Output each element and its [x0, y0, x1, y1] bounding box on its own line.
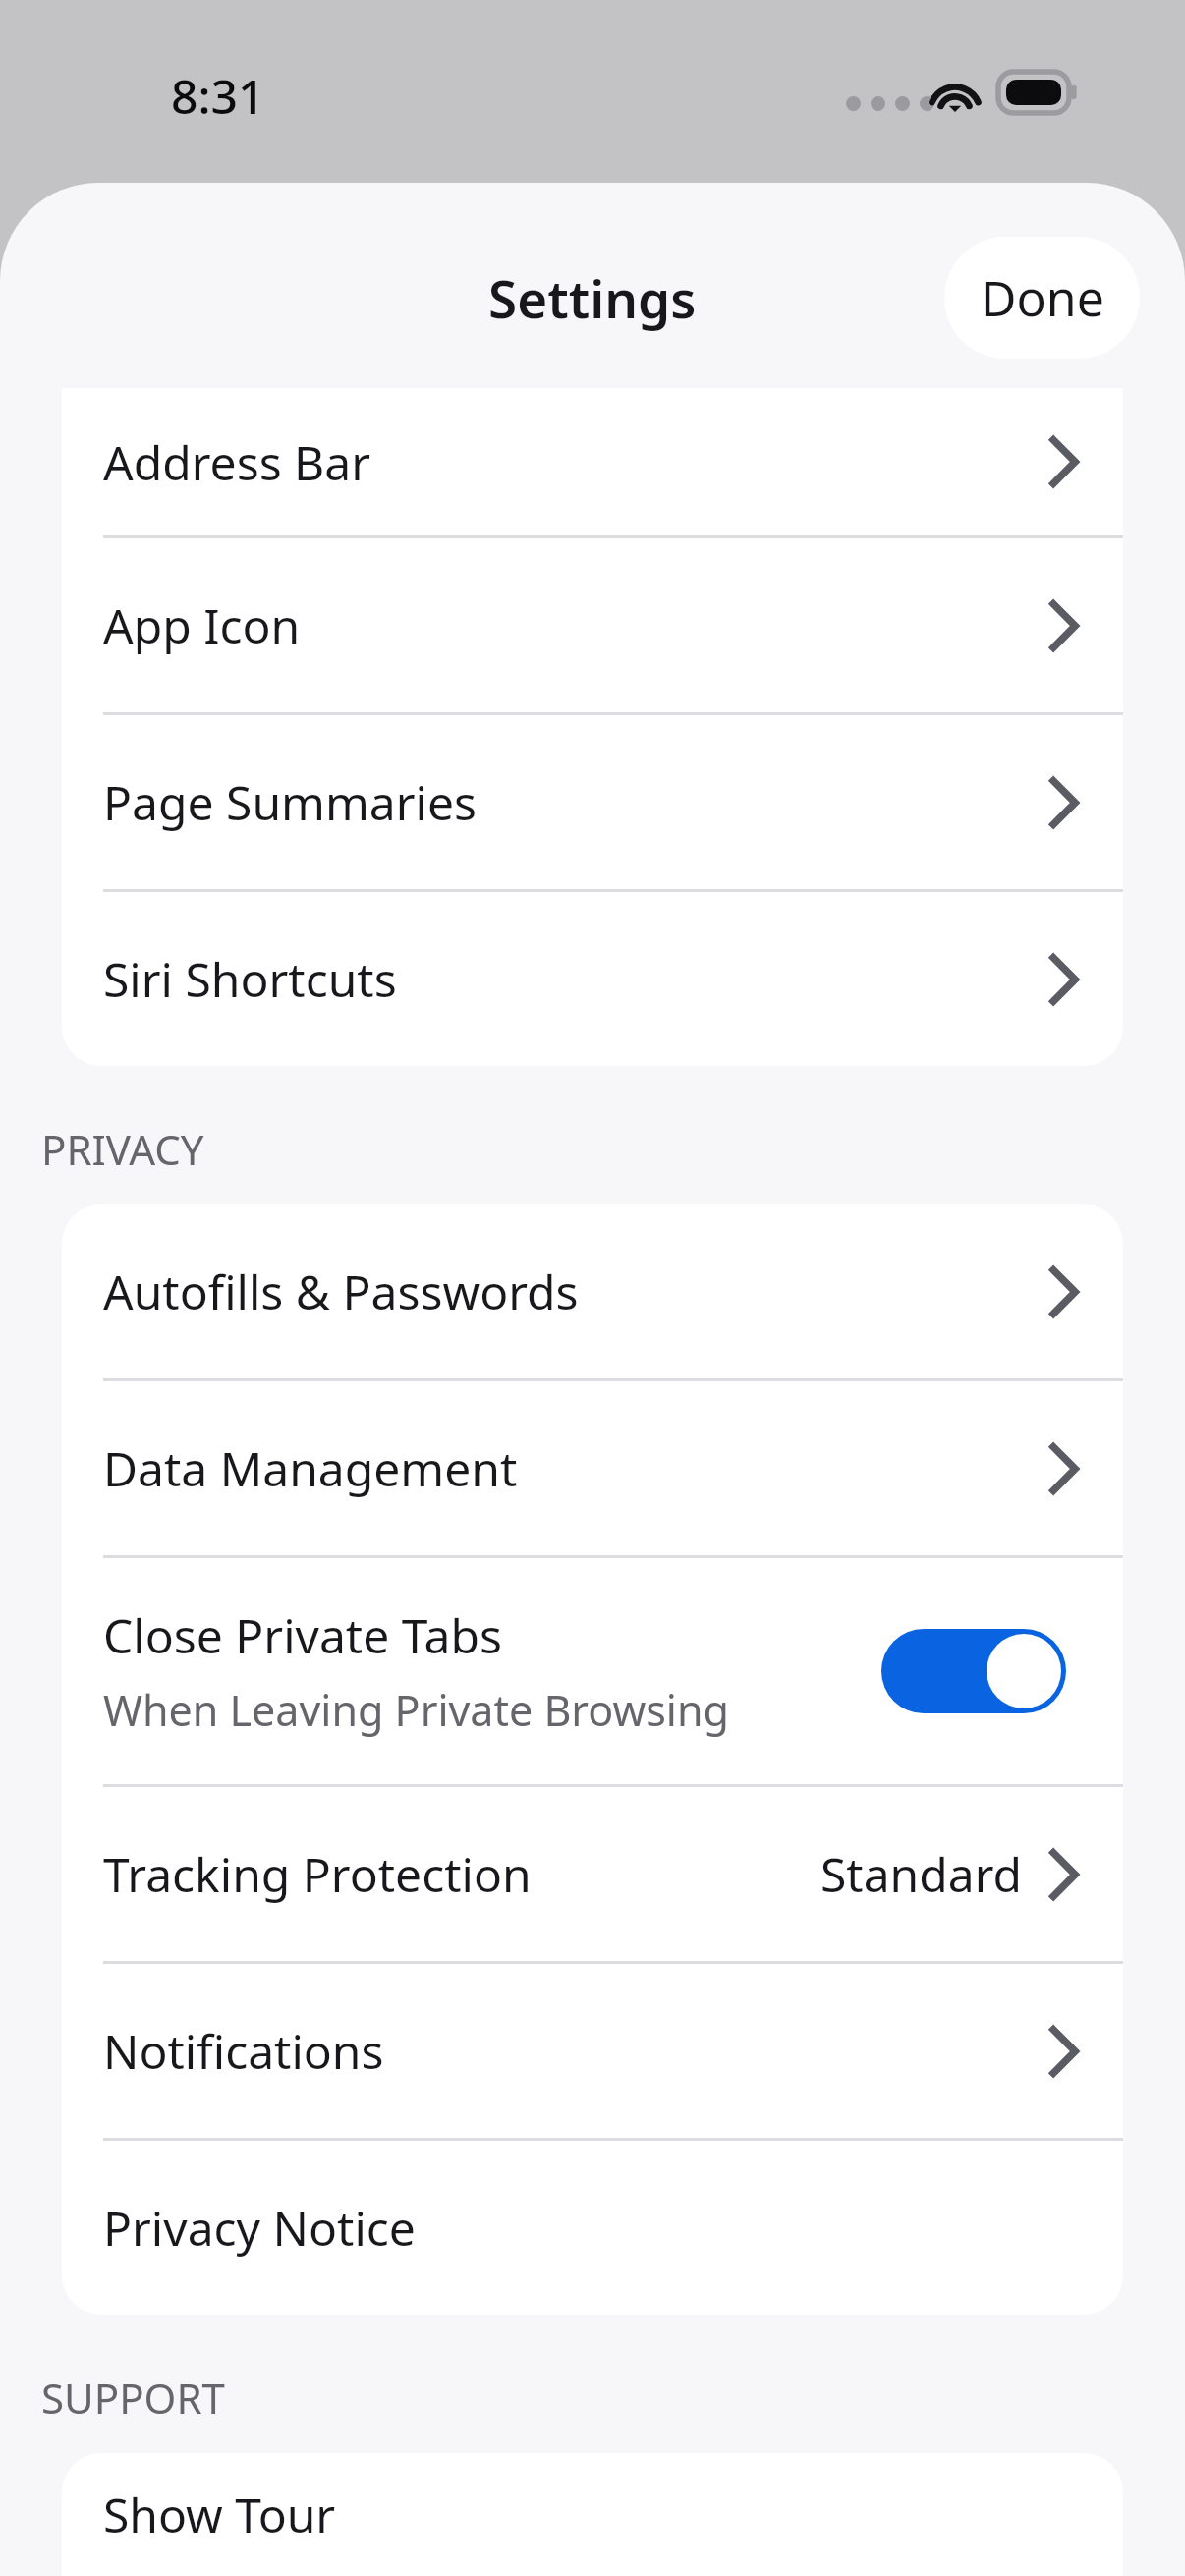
button[interactable]: Notifications — [62, 1964, 1123, 2138]
staticText: When Leaving Private Browsing — [103, 1681, 729, 1739]
button[interactable]: Close Private Tabs, on — [881, 1629, 1066, 1713]
staticText: Close Private Tabs — [103, 1603, 503, 1667]
button[interactable]: Close Private Tabs — [62, 1558, 1123, 1784]
staticText: Data Management — [103, 1436, 518, 1500]
staticText: Address Bar — [103, 430, 371, 494]
staticText: Show Tour — [103, 2483, 336, 2547]
staticText: Siri Shortcuts — [103, 947, 397, 1011]
button[interactable]: Autofills & Passwords — [62, 1204, 1123, 1378]
button[interactable]: Page Summaries — [62, 715, 1123, 889]
staticText: Autofills & Passwords — [103, 1260, 579, 1323]
button[interactable]: Show Tour — [62, 2453, 1123, 2576]
staticText: Page Summaries — [103, 770, 478, 834]
staticText: SUPPORT — [41, 2370, 225, 2426]
button[interactable]: Data Management — [62, 1381, 1123, 1555]
button[interactable]: App Icon — [62, 538, 1123, 712]
staticText: Tracking Protection — [103, 1842, 532, 1906]
staticText: Notifications — [103, 2019, 384, 2083]
button[interactable]: Privacy Notice — [62, 2141, 1123, 2315]
button[interactable]: Tracking Protection — [62, 1787, 1123, 1961]
staticText: Privacy Notice — [103, 2196, 416, 2260]
staticText: Standard — [820, 1842, 1023, 1906]
staticText: Settings — [488, 262, 697, 333]
staticText: 8:31 — [171, 64, 265, 128]
staticText: Done — [981, 264, 1104, 331]
staticText: App Icon — [103, 593, 301, 657]
button[interactable]: Siri Shortcuts — [62, 892, 1123, 1066]
button[interactable]: Done — [944, 237, 1140, 359]
button[interactable]: Address Bar — [62, 388, 1123, 535]
staticText: PRIVACY — [41, 1121, 204, 1177]
